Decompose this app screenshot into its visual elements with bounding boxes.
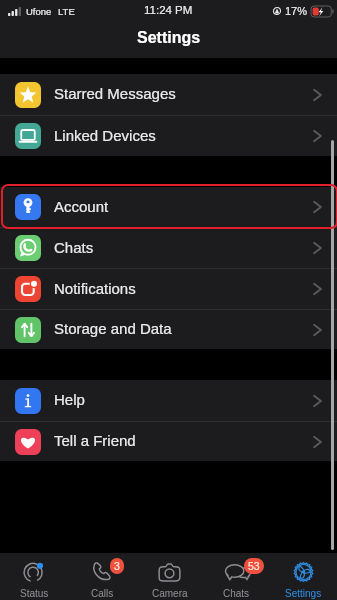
staticText: Settings xyxy=(137,29,201,47)
staticText: Storage and Data xyxy=(54,320,172,337)
staticText: Help xyxy=(54,391,85,408)
button[interactable]: Storage and Data xyxy=(0,310,337,349)
button[interactable]: 53 xyxy=(203,553,270,600)
button[interactable]: Help xyxy=(0,380,337,422)
button[interactable]: Chats xyxy=(0,228,337,269)
button[interactable]: Status xyxy=(0,553,68,600)
button[interactable]: Settings xyxy=(270,553,337,600)
button[interactable]: Camera xyxy=(136,553,203,600)
staticText: Notifications xyxy=(54,280,136,297)
staticText: 11:24 PM xyxy=(144,4,193,17)
staticText: Starred Messages xyxy=(54,85,176,102)
button[interactable]: Tell a Friend xyxy=(0,422,337,461)
staticText: Settings xyxy=(285,588,322,599)
staticText: Linked Devices xyxy=(54,127,156,144)
staticText: Calls xyxy=(91,588,114,599)
staticText: 3 xyxy=(114,560,120,572)
staticText: Chats xyxy=(223,588,250,599)
staticText: 53 xyxy=(248,560,260,572)
staticText: Ufone xyxy=(26,6,52,17)
staticText: LTE xyxy=(58,6,75,17)
staticText: Camera xyxy=(152,588,188,599)
button[interactable]: Linked Devices xyxy=(0,116,337,156)
button[interactable]: Account xyxy=(0,187,337,228)
button[interactable]: Starred Messages xyxy=(0,74,337,116)
staticText: Tell a Friend xyxy=(54,432,136,449)
staticText: 17% xyxy=(285,5,308,17)
button[interactable]: 3 xyxy=(68,553,136,600)
staticText: Chats xyxy=(54,239,94,256)
button[interactable]: Notifications xyxy=(0,269,337,310)
staticText: Status xyxy=(20,588,49,599)
staticText: Account xyxy=(54,198,109,215)
